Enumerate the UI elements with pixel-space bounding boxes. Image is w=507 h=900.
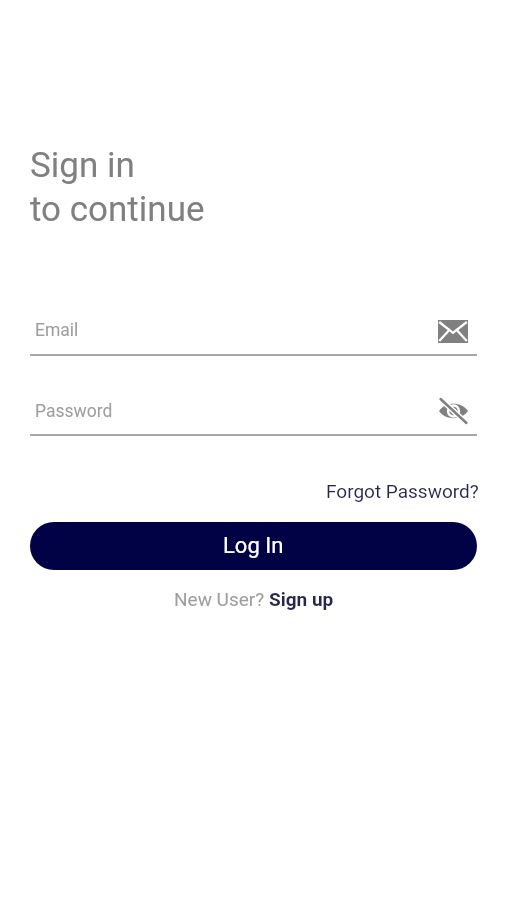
button[interactable]: Sign up bbox=[269, 588, 334, 610]
staticText: Log In bbox=[223, 533, 284, 559]
button[interactable]: Forgot Password? bbox=[326, 476, 479, 506]
button[interactable]: Email bbox=[431, 312, 475, 350]
button[interactable]: Email bbox=[30, 312, 477, 356]
staticText: New User? bbox=[174, 588, 269, 610]
button[interactable]: Show password bbox=[431, 392, 475, 430]
button[interactable]: Password bbox=[30, 392, 477, 436]
staticText: Sign in to continue bbox=[30, 145, 205, 230]
staticText: Password bbox=[35, 401, 113, 422]
staticText: Email bbox=[35, 320, 79, 341]
button[interactable]: Log In bbox=[30, 522, 477, 570]
